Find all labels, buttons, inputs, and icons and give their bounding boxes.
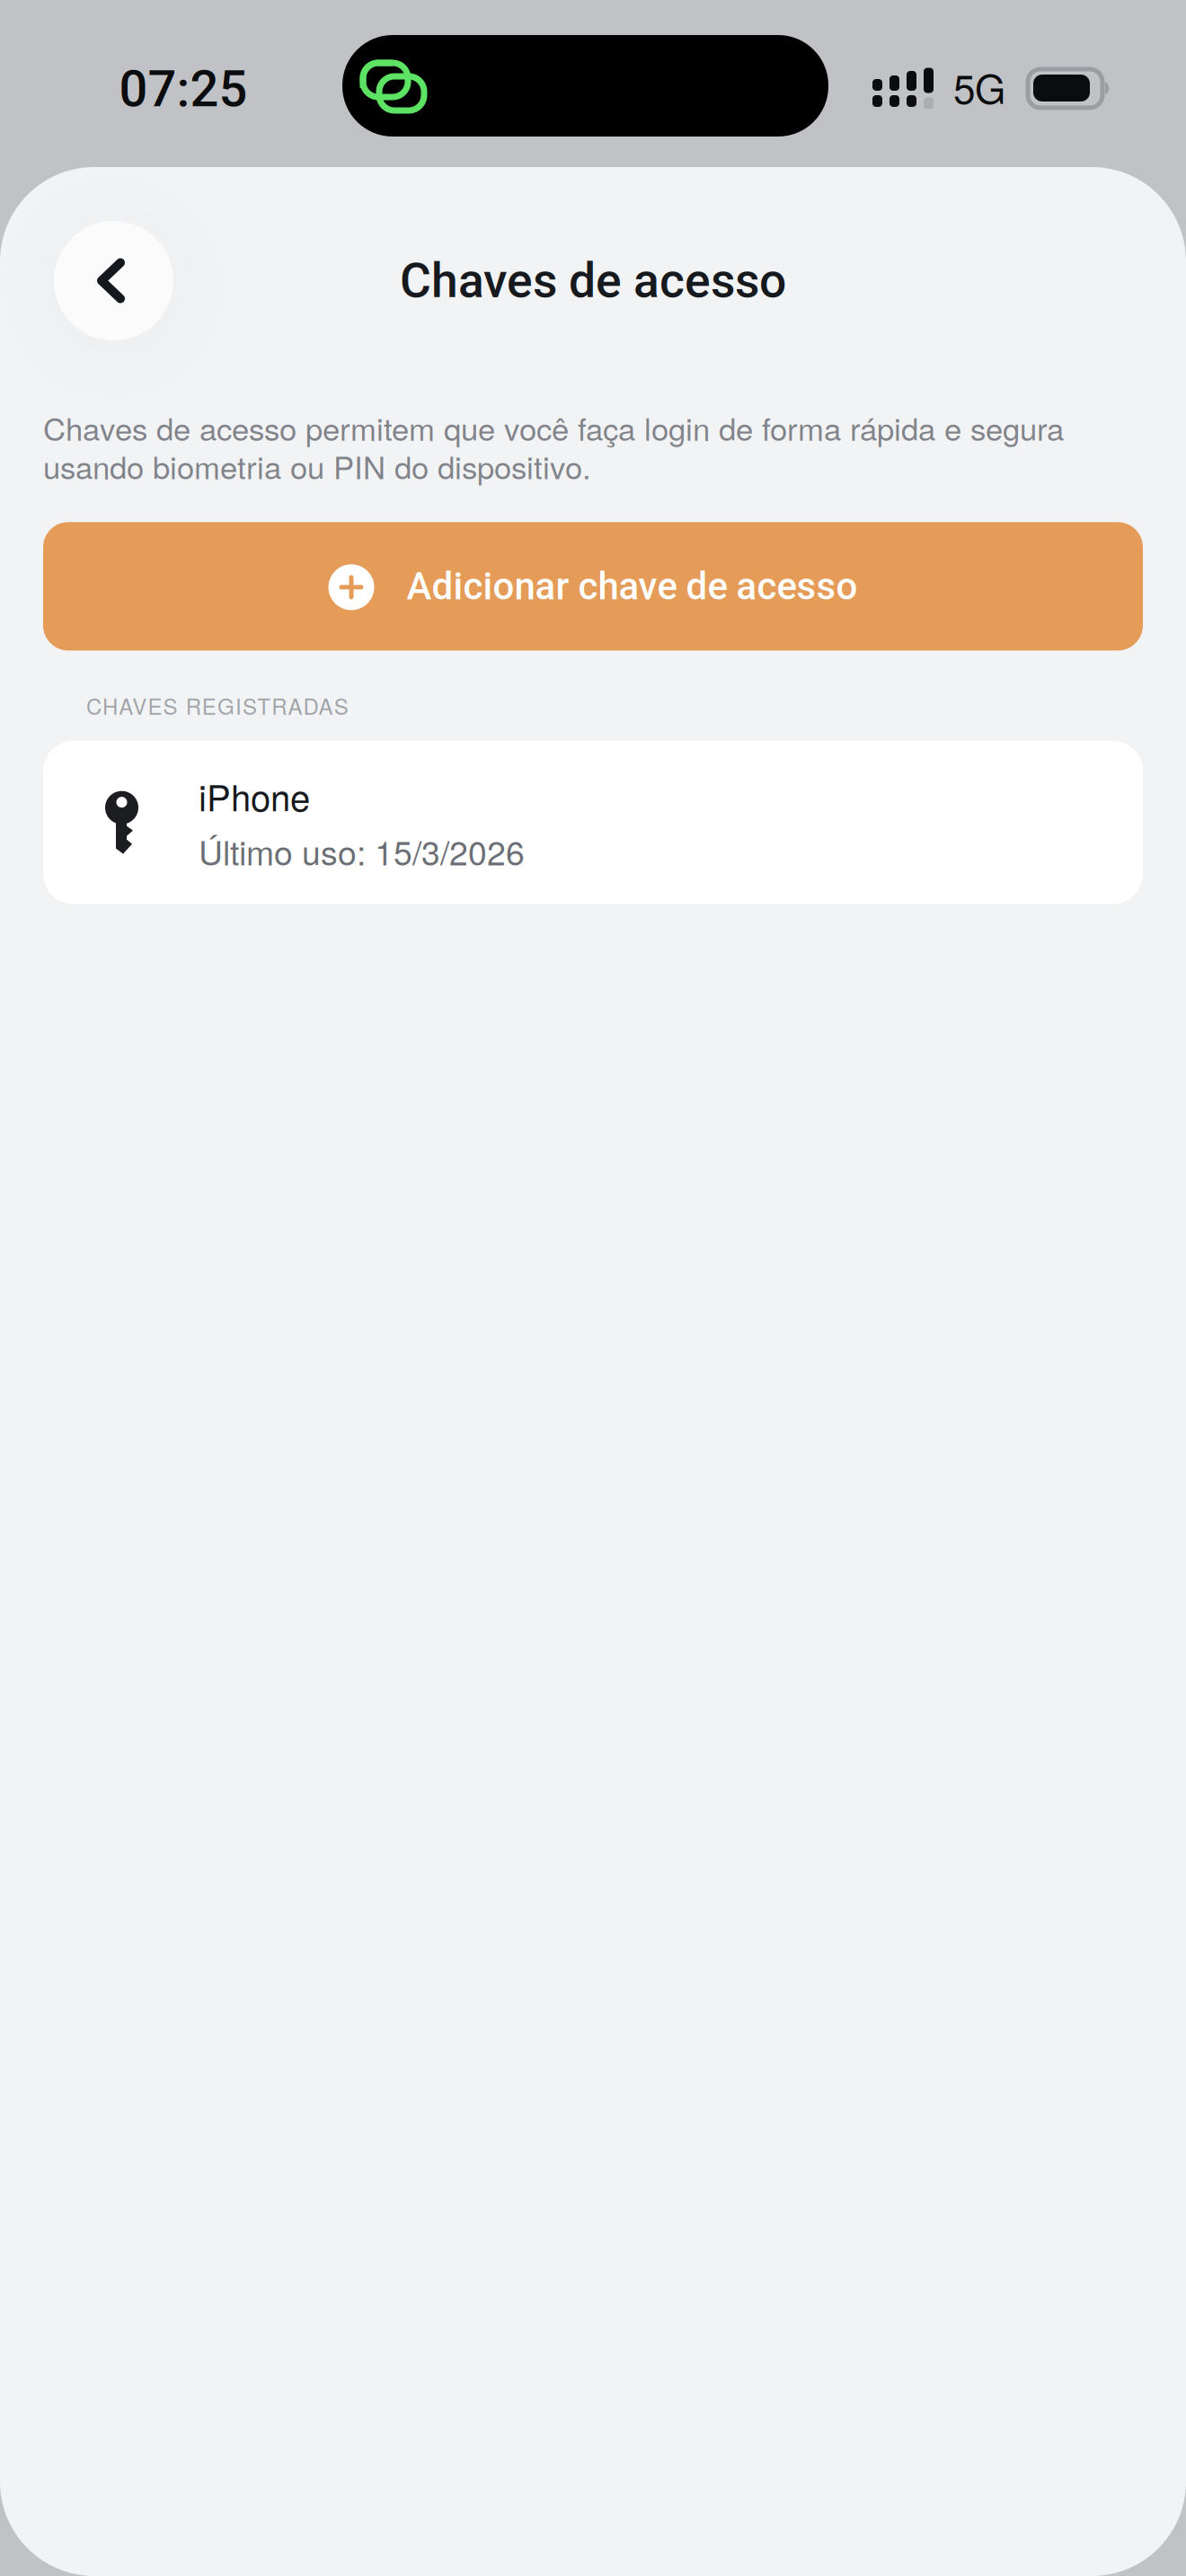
staticText: Chaves de acesso permitem que você faça … xyxy=(43,405,1064,488)
staticText: 07:25 xyxy=(119,59,248,118)
button[interactable]: Adicionar chave de acesso xyxy=(43,522,1143,651)
staticText: Adicionar chave de acesso xyxy=(407,564,858,608)
staticText: 5G xyxy=(953,58,1005,115)
staticText: CHAVES REGISTRADAS xyxy=(86,690,348,721)
button[interactable]: Back xyxy=(54,221,173,340)
staticText: Chaves de acesso xyxy=(400,253,786,309)
staticText: Último uso: 15/3/2026 xyxy=(199,827,525,875)
button[interactable]: iPhone xyxy=(43,741,1143,904)
staticText: iPhone xyxy=(199,770,310,821)
